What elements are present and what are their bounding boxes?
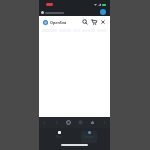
staticText: OpenSea (50, 20, 67, 25)
staticText: Files (56, 135, 62, 139)
button[interactable]: Tabs (62, 117, 74, 128)
staticText: Chrome (84, 135, 94, 139)
button[interactable]: Close (100, 19, 106, 25)
button[interactable]: Cart (91, 19, 97, 25)
button[interactable]: Refresh (74, 117, 86, 128)
button[interactable]: Search (82, 19, 88, 25)
button[interactable]: Home (86, 117, 98, 128)
button[interactable]: Chrome (81, 131, 97, 143)
button[interactable]: Files (51, 131, 67, 143)
button[interactable]: Address bar (39, 8, 110, 16)
